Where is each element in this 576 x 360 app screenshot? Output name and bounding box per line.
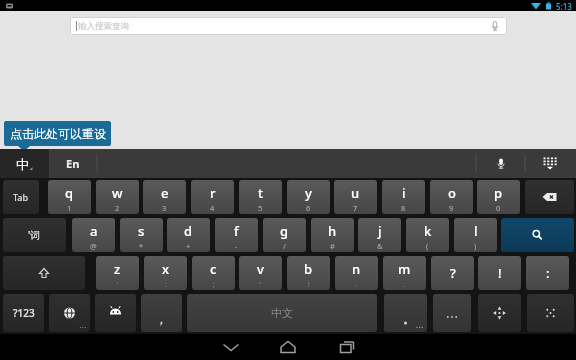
- staticText: c: [210, 260, 217, 278]
- staticText: g: [280, 222, 289, 240]
- staticText: 中: [16, 156, 29, 172]
- staticText: -: [355, 280, 358, 289]
- staticText: ): [474, 241, 477, 251]
- staticText: 0: [496, 203, 501, 213]
- button[interactable]: o: [430, 180, 473, 214]
- button[interactable]: q: [48, 180, 91, 214]
- staticText: e: [161, 184, 169, 202]
- button[interactable]: a: [72, 218, 115, 252]
- staticText: +: [186, 241, 191, 251]
- button[interactable]: b: [287, 256, 330, 290]
- button[interactable]: :: [526, 256, 569, 290]
- button[interactable]: m: [383, 256, 426, 290]
- staticText: :: [546, 264, 550, 282]
- staticText: 5:13: [556, 1, 572, 12]
- staticText: 2: [115, 203, 120, 213]
- staticText: u: [351, 184, 360, 202]
- button[interactable]: x: [144, 256, 187, 290]
- staticText: l: [474, 222, 478, 240]
- button[interactable]: h: [311, 218, 354, 252]
- button[interactable]: y: [287, 180, 330, 214]
- button[interactable]: En: [49, 149, 97, 178]
- button[interactable]: [501, 218, 574, 252]
- button[interactable]: [273, 338, 303, 358]
- staticText: !: [498, 264, 502, 282]
- button[interactable]: [527, 294, 574, 332]
- button[interactable]: 点击此处可以重设: [4, 121, 111, 146]
- button[interactable]: [331, 338, 361, 358]
- staticText: p: [494, 184, 503, 202]
- button[interactable]: [433, 294, 471, 332]
- button[interactable]: i: [382, 180, 425, 214]
- staticText: q: [65, 184, 74, 202]
- button[interactable]: !: [478, 256, 521, 290]
- button[interactable]: ?123: [3, 294, 44, 332]
- staticText: s: [138, 222, 145, 240]
- staticText: (: [426, 241, 429, 251]
- staticText: 6: [306, 203, 311, 213]
- button[interactable]: f: [215, 218, 258, 252]
- staticText: *: [139, 241, 144, 251]
- button[interactable]: 输入搜索查询: [70, 17, 507, 35]
- button[interactable]: [484, 152, 518, 176]
- button[interactable]: 中文: [187, 294, 377, 332]
- button[interactable]: g: [263, 218, 306, 252]
- button[interactable]: l: [454, 218, 497, 252]
- button[interactable]: ?: [431, 256, 474, 290]
- staticText: &: [377, 241, 383, 251]
- staticText: 9: [449, 203, 454, 213]
- button[interactable]: e: [143, 180, 186, 214]
- button[interactable]: w: [96, 180, 139, 214]
- button[interactable]: [478, 294, 521, 332]
- button[interactable]: [49, 294, 90, 332]
- button[interactable]: v: [239, 256, 282, 290]
- staticText: r: [210, 184, 216, 202]
- button[interactable]: t: [239, 180, 282, 214]
- staticText: 点击此处可以重设: [10, 126, 106, 141]
- staticText: n: [352, 260, 361, 278]
- button[interactable]: [141, 294, 182, 332]
- button[interactable]: r: [191, 180, 234, 214]
- staticText: ?: [450, 264, 456, 282]
- button[interactable]: z: [96, 256, 139, 290]
- button[interactable]: 中: [0, 149, 49, 178]
- staticText: 8: [401, 203, 406, 213]
- staticText: !: [308, 280, 310, 289]
- button[interactable]: j: [358, 218, 401, 252]
- button[interactable]: [216, 338, 246, 358]
- staticText: -: [235, 241, 238, 251]
- staticText: ?123: [13, 306, 35, 320]
- button[interactable]: d: [167, 218, 210, 252]
- button[interactable]: [95, 294, 136, 332]
- button[interactable]: [384, 294, 427, 332]
- staticText: ": [259, 280, 262, 289]
- staticText: 3: [162, 203, 167, 213]
- staticText: ': [117, 280, 119, 289]
- staticText: a: [90, 222, 98, 240]
- button[interactable]: '词: [3, 218, 66, 252]
- button[interactable]: [3, 256, 85, 290]
- staticText: o: [448, 184, 456, 202]
- button[interactable]: u: [334, 180, 377, 214]
- staticText: b: [304, 260, 313, 278]
- button[interactable]: n: [335, 256, 378, 290]
- staticText: k: [424, 222, 432, 240]
- button[interactable]: [533, 152, 567, 176]
- button[interactable]: s: [120, 218, 163, 252]
- button[interactable]: c: [192, 256, 235, 290]
- staticText: x: [162, 260, 170, 278]
- staticText: 1: [67, 203, 72, 213]
- staticText: d: [184, 222, 193, 240]
- button[interactable]: p: [477, 180, 520, 214]
- staticText: 4: [210, 203, 215, 213]
- staticText: y: [305, 184, 312, 202]
- staticText: #: [330, 241, 335, 251]
- button[interactable]: [525, 180, 574, 214]
- staticText: j: [378, 222, 382, 240]
- staticText: .: [404, 280, 406, 289]
- staticText: i: [402, 184, 406, 202]
- staticText: /: [283, 241, 286, 251]
- button[interactable]: k: [406, 218, 449, 252]
- button[interactable]: Tab: [3, 180, 39, 214]
- staticText: t: [258, 184, 263, 202]
